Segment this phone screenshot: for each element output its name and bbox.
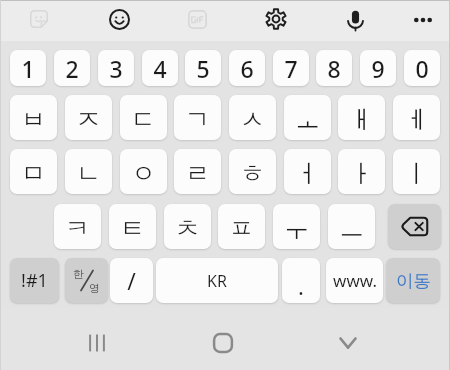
- staticText: 2: [65, 53, 79, 84]
- button[interactable]: 9: [360, 50, 396, 86]
- button[interactable]: 이동: [386, 258, 440, 303]
- staticText: .: [298, 271, 304, 301]
- button[interactable]: 8: [316, 50, 352, 86]
- staticText: 5: [196, 53, 210, 84]
- staticText: ㅌ: [120, 213, 145, 244]
- button[interactable]: Settings: [260, 3, 292, 35]
- button[interactable]: ㅈ: [65, 95, 112, 140]
- staticText: ㅂ: [21, 104, 46, 135]
- button[interactable]: ㄱ: [174, 95, 221, 140]
- button[interactable]: ㅅ: [229, 95, 276, 140]
- button[interactable]: ㅎ: [229, 149, 276, 194]
- button[interactable]: 4: [142, 50, 178, 86]
- button[interactable]: 2: [54, 50, 90, 86]
- button[interactable]: GIF: [181, 3, 213, 35]
- staticText: ㅈ: [76, 104, 101, 135]
- button[interactable]: Emoji: [103, 3, 135, 35]
- button[interactable]: www.: [326, 258, 383, 303]
- button[interactable]: 한: [65, 258, 108, 303]
- button[interactable]: ㅁ: [10, 149, 57, 194]
- button[interactable]: KR: [156, 258, 278, 303]
- button[interactable]: Hide keyboard: [324, 319, 372, 367]
- button[interactable]: 7: [273, 50, 309, 86]
- staticText: ㅐ: [349, 104, 374, 135]
- button[interactable]: ㄷ: [120, 95, 167, 140]
- staticText: !#1: [21, 268, 48, 293]
- staticText: ㅅ: [240, 104, 265, 135]
- button[interactable]: ㅗ: [284, 95, 331, 140]
- button[interactable]: Home: [199, 319, 247, 367]
- button[interactable]: Stickers: [23, 3, 55, 35]
- button[interactable]: .: [282, 258, 320, 303]
- staticText: /: [127, 265, 136, 296]
- button[interactable]: Recents: [73, 319, 121, 367]
- button[interactable]: 3: [98, 50, 134, 86]
- staticText: ㅔ: [404, 104, 429, 135]
- staticText: 8: [327, 53, 341, 84]
- button[interactable]: ㅡ: [328, 204, 375, 249]
- button[interactable]: ㅋ: [54, 204, 101, 249]
- staticText: KR: [207, 270, 227, 292]
- staticText: ㄱ: [185, 104, 210, 135]
- staticText: 4: [153, 53, 167, 84]
- button[interactable]: Voice input: [339, 4, 371, 36]
- button[interactable]: More options: [407, 4, 439, 36]
- button[interactable]: 1: [10, 50, 46, 86]
- button[interactable]: 6: [229, 50, 265, 86]
- button[interactable]: ㅏ: [338, 149, 385, 194]
- staticText: 영: [89, 281, 100, 295]
- staticText: ㅁ: [21, 158, 46, 189]
- button[interactable]: 5: [185, 50, 221, 86]
- staticText: ㄹ: [185, 158, 210, 189]
- button[interactable]: ㅜ: [273, 204, 320, 249]
- button[interactable]: !#1: [10, 258, 59, 303]
- button[interactable]: ㅔ: [393, 95, 440, 140]
- staticText: ㄴ: [76, 158, 101, 189]
- staticText: ㅣ: [404, 158, 429, 189]
- button[interactable]: /: [110, 258, 153, 303]
- button[interactable]: ㄴ: [65, 149, 112, 194]
- staticText: www.: [333, 269, 377, 292]
- staticText: ㅗ: [295, 104, 320, 135]
- staticText: ㅓ: [295, 158, 320, 189]
- staticText: 3: [109, 53, 123, 84]
- button[interactable]: ㅇ: [120, 149, 167, 194]
- staticText: 6: [240, 53, 254, 84]
- staticText: 한: [73, 267, 84, 281]
- staticText: 7: [284, 53, 298, 84]
- button[interactable]: ㅂ: [10, 95, 57, 140]
- staticText: ㅎ: [240, 158, 265, 189]
- staticText: ㅇ: [131, 158, 156, 189]
- button[interactable]: ㅐ: [338, 95, 385, 140]
- staticText: ㅍ: [229, 213, 254, 244]
- staticText: 0: [415, 53, 429, 84]
- button[interactable]: ㅓ: [284, 149, 331, 194]
- button[interactable]: Backspace: [388, 204, 441, 249]
- button[interactable]: ㅣ: [393, 149, 440, 194]
- staticText: ㄷ: [131, 104, 156, 135]
- button[interactable]: ㅊ: [164, 204, 211, 249]
- staticText: 이동: [396, 270, 431, 292]
- staticText: 9: [371, 53, 385, 84]
- staticText: ㅏ: [349, 158, 374, 189]
- button[interactable]: ㅍ: [218, 204, 265, 249]
- staticText: ㅊ: [175, 213, 200, 244]
- button[interactable]: ㅌ: [109, 204, 156, 249]
- button[interactable]: 0: [404, 50, 440, 86]
- staticText: ㅜ: [284, 213, 309, 244]
- staticText: ㅋ: [65, 213, 90, 244]
- staticText: ㅡ: [339, 213, 364, 244]
- button[interactable]: ㄹ: [174, 149, 221, 194]
- staticText: 1: [21, 53, 35, 84]
